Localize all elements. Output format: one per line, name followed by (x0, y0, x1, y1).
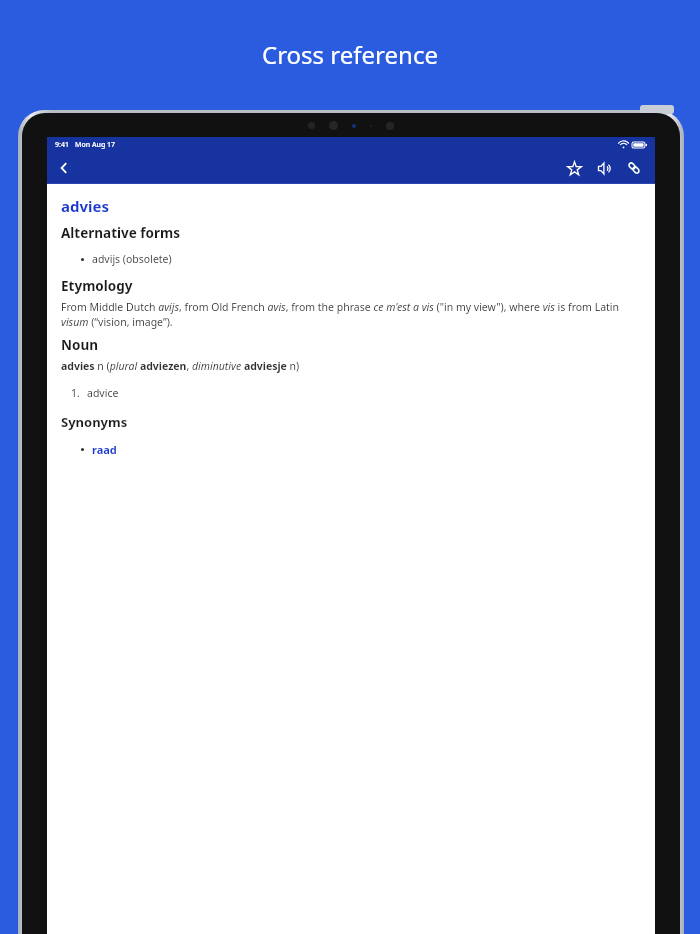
staticText: raad (92, 442, 117, 457)
staticText: Mon Aug 17 (75, 140, 116, 150)
staticText: advice (87, 386, 119, 400)
staticText: Etymology (61, 277, 133, 295)
staticText: advijs (obsolete) (92, 252, 172, 266)
staticText: From Middle Dutch avijs, from Old French… (61, 300, 641, 329)
staticText: Cross reference (262, 38, 438, 71)
button[interactable]: Pronounce (589, 153, 619, 183)
button[interactable]: Copy link (619, 153, 649, 183)
staticText: Noun (61, 336, 98, 354)
staticText: Alternative forms (61, 224, 180, 242)
staticText: 9:41 (55, 140, 69, 150)
staticText: advies n (plural adviezen, diminutive ad… (61, 359, 300, 373)
staticText: 1. (71, 386, 80, 400)
staticText: Synonyms (61, 413, 128, 431)
button[interactable]: Back (47, 152, 81, 184)
button[interactable]: raad (81, 442, 117, 457)
staticText: advies (61, 196, 110, 216)
button[interactable]: Add to favourites (559, 153, 589, 183)
